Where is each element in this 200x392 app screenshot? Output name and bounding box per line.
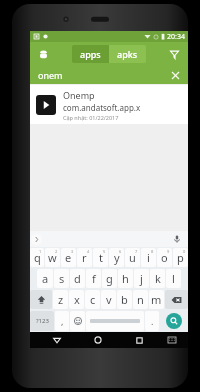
button[interactable]: c	[85, 290, 100, 309]
staticText: com.andatsoft.app.x	[63, 102, 141, 113]
button[interactable]: Filter	[166, 46, 182, 62]
staticText: apks	[117, 48, 138, 60]
button[interactable]: More suggestions	[31, 234, 42, 245]
staticText: 2	[55, 249, 58, 254]
staticText: j	[140, 271, 143, 286]
button[interactable]: App icon	[37, 48, 49, 60]
button[interactable]: g	[102, 269, 117, 288]
button[interactable]: d	[70, 269, 85, 288]
button[interactable]: a	[37, 269, 53, 288]
staticText: b	[121, 292, 128, 307]
button[interactable]: k	[150, 269, 165, 288]
button[interactable]: 0	[173, 248, 188, 267]
staticText: a	[42, 271, 49, 286]
staticText: 6	[119, 249, 122, 254]
button[interactable]: l	[166, 269, 181, 288]
staticText: 20:34	[167, 32, 185, 42]
button[interactable]: apks	[109, 45, 146, 63]
staticText: .	[151, 315, 154, 327]
staticText: apps	[80, 48, 101, 60]
staticText: w	[48, 250, 57, 265]
button[interactable]: Search	[166, 313, 182, 329]
button[interactable]: .	[145, 311, 159, 331]
staticText: v	[106, 292, 112, 307]
button[interactable]: ,	[55, 311, 69, 331]
staticText: onem	[38, 69, 63, 81]
button[interactable]: Emoji	[70, 311, 85, 331]
button[interactable]: 6	[109, 248, 124, 267]
button[interactable]: h	[118, 269, 133, 288]
button[interactable]: 9	[157, 248, 172, 267]
staticText: ,	[61, 315, 64, 327]
staticText: 8	[151, 249, 154, 254]
button[interactable]: Clear search	[169, 69, 181, 81]
button[interactable]: z	[53, 290, 68, 309]
button[interactable]: v	[101, 290, 116, 309]
button[interactable]: s	[54, 269, 69, 288]
button[interactable]: Back	[49, 332, 65, 348]
staticText: ?123	[36, 317, 49, 325]
staticText: 3	[71, 249, 74, 254]
staticText: o	[161, 250, 168, 265]
button[interactable]: j	[134, 269, 149, 288]
button[interactable]: 8	[141, 248, 156, 267]
staticText: 5	[103, 249, 106, 254]
button[interactable]: 3	[61, 248, 76, 267]
staticText: q	[34, 250, 41, 265]
staticText: s	[59, 271, 65, 286]
button[interactable]: 1	[30, 248, 44, 267]
button[interactable]: Backspace	[165, 290, 188, 309]
button[interactable]: apps	[72, 45, 109, 63]
staticText: k	[155, 271, 161, 286]
button[interactable]: 4	[77, 248, 92, 267]
staticText: 0	[183, 249, 186, 254]
staticText: Cập nhật: 01/22/2017	[63, 114, 119, 121]
staticText: l	[172, 271, 175, 286]
button[interactable]: Onemp	[30, 85, 188, 124]
button[interactable]: Home	[90, 332, 106, 348]
staticText: i	[147, 250, 150, 265]
button[interactable]: Shift	[30, 290, 52, 309]
button[interactable]: n	[133, 290, 148, 309]
staticText: z	[58, 292, 64, 307]
button[interactable]: b	[117, 290, 132, 309]
staticText: y	[114, 250, 120, 265]
button[interactable]: 2	[45, 248, 60, 267]
staticText: 9	[167, 249, 170, 254]
staticText: n	[137, 292, 144, 307]
button[interactable]: Recent apps	[131, 332, 147, 348]
button[interactable]: Voice input	[171, 233, 183, 245]
button[interactable]: 7	[125, 248, 140, 267]
staticText: h	[122, 271, 129, 286]
staticText: g	[106, 271, 113, 286]
staticText: 1	[39, 249, 42, 254]
staticText: c	[90, 292, 96, 307]
staticText: 7	[135, 249, 138, 254]
button[interactable]: onem	[30, 65, 188, 84]
button[interactable]: f	[86, 269, 101, 288]
button[interactable]: 5	[93, 248, 108, 267]
staticText: r	[82, 250, 87, 265]
staticText: e	[65, 250, 72, 265]
button[interactable]: Hide keyboard	[165, 333, 179, 347]
staticText: m	[151, 292, 162, 307]
staticText: d	[74, 271, 81, 286]
staticText: 4	[87, 249, 90, 254]
button[interactable]: ?123	[30, 311, 54, 331]
staticText: p	[177, 250, 184, 265]
staticText: x	[74, 292, 80, 307]
button[interactable]: Space	[86, 311, 144, 331]
button[interactable]: x	[69, 290, 84, 309]
staticText: t	[99, 250, 103, 265]
staticText: f	[92, 271, 96, 286]
button[interactable]: m	[149, 290, 164, 309]
staticText: u	[129, 250, 136, 265]
staticText: Onemp	[63, 89, 95, 101]
